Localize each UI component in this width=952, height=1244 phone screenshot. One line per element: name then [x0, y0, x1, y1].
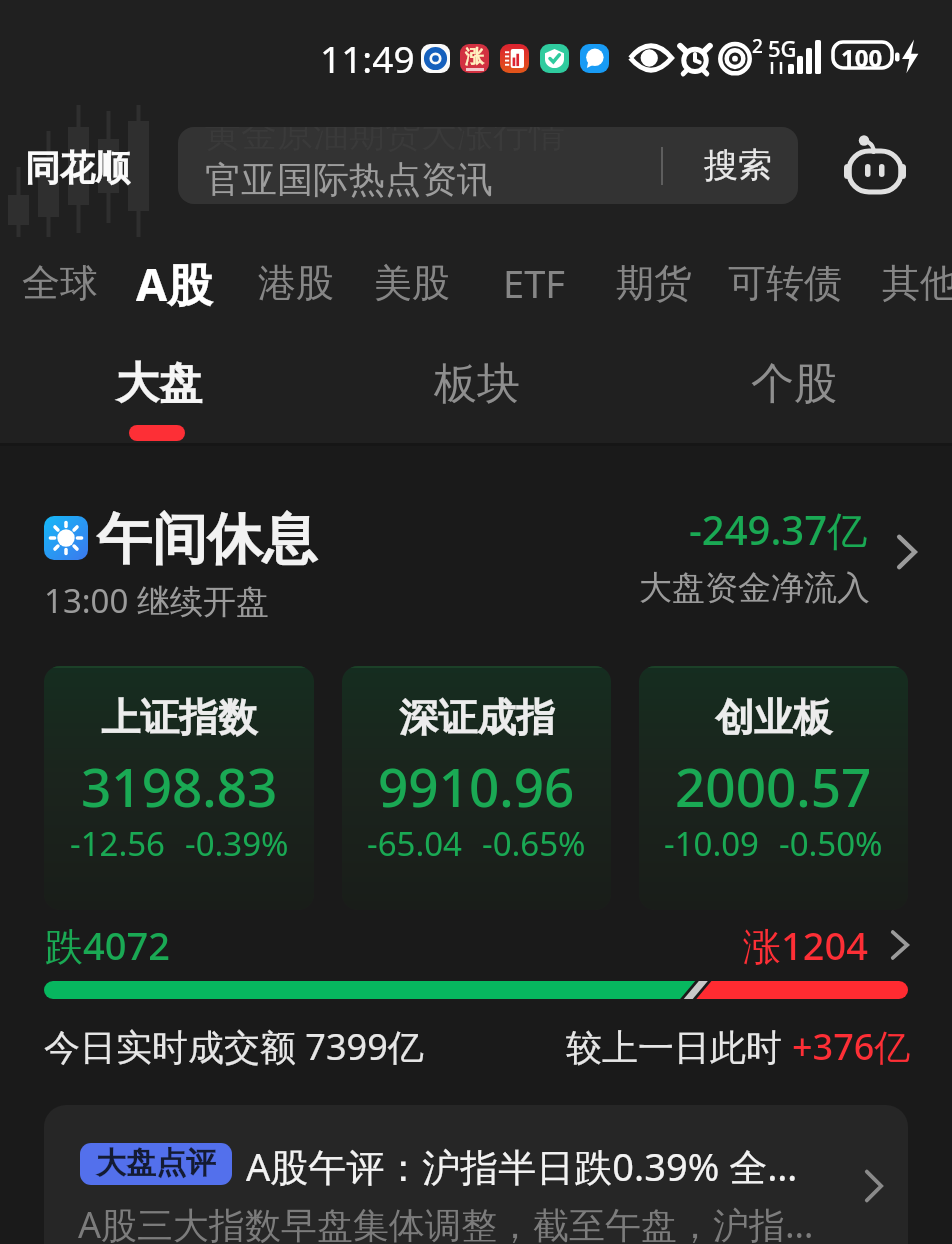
button[interactable]: 跌4072 — [0, 914, 952, 976]
staticText: 3198.83 — [81, 750, 278, 822]
staticText: -249.37亿 — [689, 502, 868, 557]
staticText: -0.39% — [185, 821, 289, 866]
button[interactable]: 午间休息 — [0, 502, 952, 618]
staticText: 较上一日此时 — [566, 1022, 792, 1071]
staticText: 其他 — [882, 259, 952, 307]
staticText: 同花顺 — [25, 146, 130, 190]
button[interactable]: ETF — [487, 245, 581, 319]
staticText: 大盘 — [116, 357, 202, 411]
staticText: 搜索 — [704, 144, 772, 187]
staticText: -0.65% — [482, 821, 586, 866]
button[interactable]: 黄金原油期货大涨行情 — [178, 127, 798, 204]
staticText: 美股 — [374, 259, 450, 307]
staticText: -0.50% — [779, 821, 883, 866]
staticText: 涨1204 — [743, 919, 868, 971]
button[interactable]: AI assistant — [820, 117, 930, 217]
staticText: -10.09 — [664, 821, 759, 866]
button[interactable]: 个股 — [635, 327, 952, 445]
button[interactable]: 深证成指 — [342, 666, 611, 910]
button[interactable]: 创业板 — [639, 666, 908, 910]
staticText: 官亚国际热点资讯 — [205, 157, 493, 202]
button[interactable]: 港股 — [242, 245, 350, 319]
staticText: +376亿 — [792, 1022, 911, 1071]
staticText: 13:00 继续开盘 — [44, 578, 269, 623]
staticText: 大盘资金净流入 — [639, 567, 870, 609]
staticText: -65.04 — [367, 821, 462, 866]
button[interactable]: 其他 — [866, 245, 952, 319]
button[interactable]: 大盘 — [0, 327, 318, 445]
button[interactable]: 上证指数 — [44, 666, 314, 910]
staticText: 创业板 — [715, 693, 832, 742]
button[interactable]: 大盘点评 — [44, 1105, 908, 1244]
staticText: 板块 — [434, 357, 520, 411]
button[interactable]: 美股 — [358, 245, 466, 319]
staticText: 大盘点评 — [96, 1144, 216, 1182]
staticText: 涨 — [465, 45, 484, 69]
staticText: ETF — [503, 257, 565, 309]
staticText: 期货 — [616, 259, 692, 307]
button[interactable]: 期货 — [600, 245, 708, 319]
staticText: 2 — [752, 33, 763, 59]
button[interactable]: 可转债 — [712, 245, 858, 319]
staticText: 2000.57 — [675, 750, 872, 822]
staticText: 上证指数 — [101, 693, 257, 742]
staticText: 个股 — [751, 357, 837, 411]
staticText: 9910.96 — [378, 750, 575, 822]
staticText: A股三大指数早盘集体调整，截至午盘，沪指… — [78, 1200, 814, 1244]
staticText: 午间休息 — [97, 505, 317, 574]
staticText: 跌4072 — [45, 919, 170, 971]
staticText: 100 — [841, 41, 883, 74]
button[interactable]: A股 — [120, 245, 229, 319]
staticText: 深证成指 — [399, 693, 555, 742]
staticText: 11:49 — [320, 33, 415, 83]
button[interactable]: 全球 — [6, 245, 114, 319]
staticText: 今日实时成交额 7399亿 — [44, 1022, 424, 1071]
staticText: 全球 — [22, 259, 98, 307]
staticText: -12.56 — [70, 821, 165, 866]
staticText: A股午评：沪指半日跌0.39% 全… — [246, 1140, 798, 1192]
button[interactable]: 板块 — [318, 327, 635, 445]
staticText: 5G — [768, 33, 797, 63]
staticText: A股 — [136, 253, 213, 314]
staticText: 可转债 — [728, 259, 842, 307]
staticText: 港股 — [258, 259, 334, 307]
